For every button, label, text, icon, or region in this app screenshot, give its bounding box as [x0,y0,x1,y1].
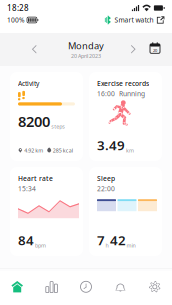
button[interactable]: Activity [10,72,83,161]
button[interactable]: Home [0,274,34,300]
staticText: Exercise records [97,79,149,88]
staticText: h [105,242,108,249]
staticText: 18:28 [7,3,29,13]
staticText: 285 kcal [53,147,73,154]
staticText: 22:00 [97,184,115,193]
button[interactable]: History [69,274,103,300]
staticText: 8200 [18,112,50,131]
staticText: 100% [7,16,25,24]
staticText: Activity [18,79,39,88]
button[interactable]: Settings [138,274,172,300]
staticText: km [126,147,134,154]
staticText: Smart watch [114,16,153,24]
button[interactable]: Statistics [34,274,69,300]
button[interactable]: Exercise records [89,72,162,161]
button[interactable]: Next day [124,39,142,59]
staticText: 20 April 2023 [71,52,101,59]
staticText: 7 [97,231,105,249]
staticText: 16:00 Running [97,89,145,98]
staticText: Sleep [97,174,115,183]
button[interactable]: Sleep [89,167,162,256]
button[interactable]: Smart watch [104,15,165,24]
staticText: 4.92 km [24,147,43,154]
button[interactable]: Notifications [103,274,138,300]
staticText: bpm [35,242,46,249]
staticText: steps [51,123,65,130]
button[interactable]: Heart rate [10,167,83,256]
staticText: Monday [68,39,104,52]
button[interactable]: Previous day [26,39,44,59]
button[interactable]: Calendar [146,39,164,59]
staticText: Heart rate [18,174,53,183]
staticText: 15:34 [18,184,36,193]
staticText: 42 [110,231,126,249]
staticText: 84 [18,231,34,249]
staticText: min [126,242,135,249]
staticText: 20 [153,48,157,53]
staticText: 3.49 [97,136,125,154]
